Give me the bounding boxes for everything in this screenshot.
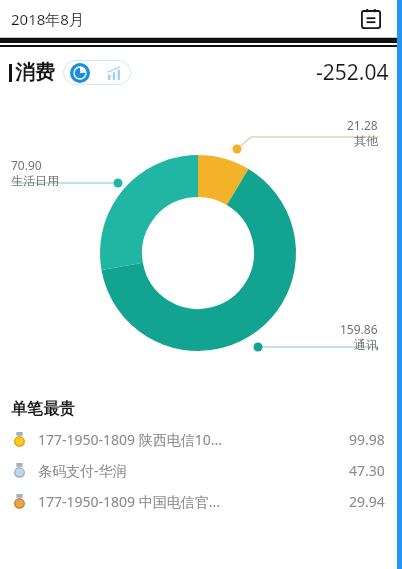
button[interactable]: Calendar bbox=[357, 5, 385, 33]
button[interactable]: 条码支付-华润 bbox=[0, 455, 402, 486]
button[interactable]: Bar chart view bbox=[97, 60, 131, 85]
staticText: 21.28 bbox=[347, 117, 378, 133]
staticText: 条码支付-华润 bbox=[38, 461, 349, 480]
staticText: 70.90 bbox=[11, 157, 42, 173]
staticText: 177-1950-1809 陕西电信10... bbox=[38, 430, 349, 449]
staticText: 其他 bbox=[354, 133, 378, 148]
staticText: 2018年8月 bbox=[11, 9, 84, 29]
staticText: 29.94 bbox=[349, 492, 385, 511]
button[interactable]: 177-1950-1809 中国电信官... bbox=[0, 486, 402, 517]
staticText: 99.98 bbox=[349, 430, 385, 449]
staticText: 单笔最贵 bbox=[11, 399, 75, 419]
staticText: 消费 bbox=[15, 60, 55, 85]
staticText: 47.30 bbox=[349, 461, 385, 480]
button[interactable]: 177-1950-1809 陕西电信10... bbox=[0, 424, 402, 455]
staticText: -252.04 bbox=[316, 58, 389, 87]
staticText: 生活日用 bbox=[11, 173, 59, 188]
staticText: 177-1950-1809 中国电信官... bbox=[38, 492, 349, 511]
staticText: 159.86 bbox=[340, 321, 378, 337]
staticText: 通讯 bbox=[354, 337, 378, 352]
button[interactable]: Pie chart view bbox=[63, 60, 97, 85]
